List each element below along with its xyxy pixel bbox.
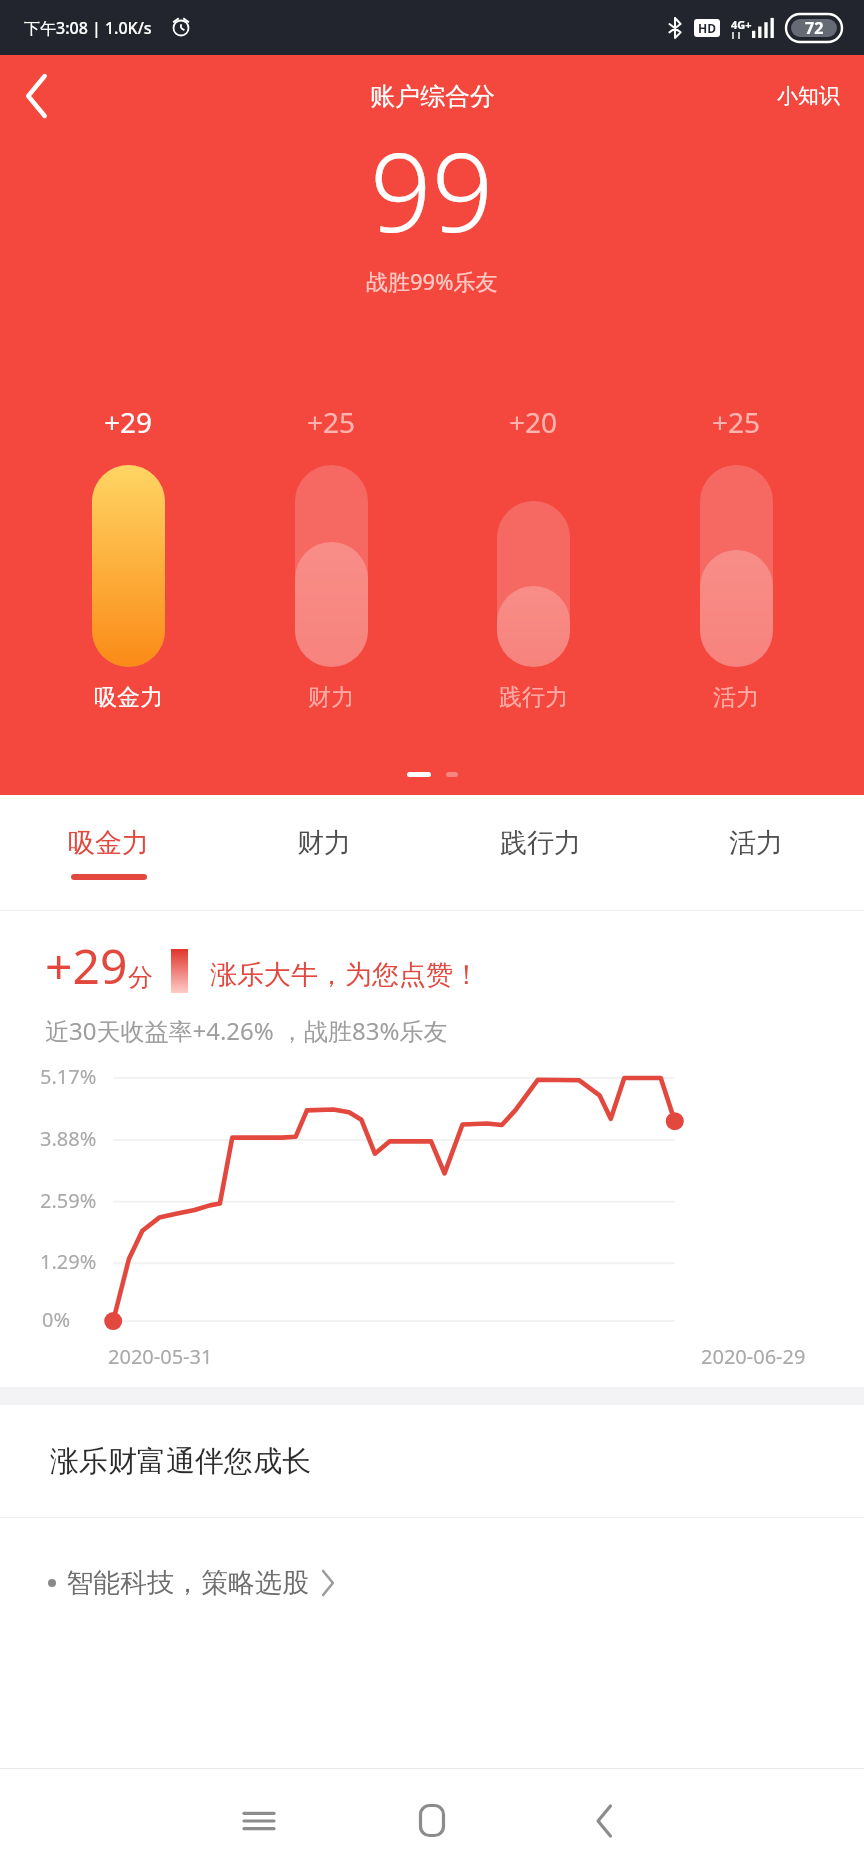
- staticText: 2020-06-29: [701, 1343, 806, 1370]
- button[interactable]: +25: [661, 403, 811, 712]
- staticText: 战胜99%乐友: [366, 266, 498, 296]
- staticText: 财力: [297, 826, 351, 860]
- button[interactable]: +25: [256, 403, 406, 712]
- staticText: 下午3:08 | 1.0K/s: [24, 17, 152, 39]
- staticText: 2.59%: [40, 1187, 97, 1214]
- button[interactable]: 践行力: [432, 795, 648, 911]
- button[interactable]: Back: [0, 59, 74, 133]
- staticText: 账户综合分: [370, 81, 495, 112]
- button[interactable]: 财力: [216, 795, 432, 911]
- staticText: 99: [370, 117, 494, 264]
- staticText: 吸金力: [94, 683, 163, 712]
- button[interactable]: Back: [518, 1769, 691, 1872]
- button[interactable]: Menu: [172, 1769, 345, 1872]
- staticText: 活力: [729, 826, 783, 860]
- staticText: 4G+: [731, 17, 752, 32]
- button[interactable]: +29: [53, 403, 203, 712]
- button[interactable]: 活力: [648, 795, 864, 911]
- staticText: 涨乐财富通伴您成长: [50, 1443, 311, 1480]
- staticText: 践行力: [500, 826, 581, 860]
- staticText: 吸金力: [68, 826, 149, 860]
- staticText: HD: [698, 20, 716, 36]
- staticText: +25: [712, 403, 761, 441]
- staticText: +25: [307, 403, 356, 441]
- button[interactable]: 小知识: [753, 67, 864, 125]
- staticText: 3.88%: [40, 1125, 97, 1152]
- staticText: 智能科技，策略选股: [66, 1566, 309, 1600]
- staticText: 分: [128, 962, 153, 993]
- staticText: 72: [805, 17, 824, 39]
- button[interactable]: 吸金力: [0, 795, 216, 911]
- button[interactable]: 涨乐财富通伴您成长: [0, 1405, 864, 1517]
- staticText: +20: [509, 403, 558, 441]
- staticText: 0%: [42, 1306, 71, 1333]
- staticText: 践行力: [499, 683, 568, 712]
- button[interactable]: 智能科技，策略选股: [0, 1518, 864, 1648]
- staticText: 财力: [308, 683, 354, 712]
- button[interactable]: +20: [458, 403, 608, 712]
- staticText: 涨乐大牛，为您点赞！: [210, 958, 480, 992]
- staticText: +29: [104, 403, 153, 441]
- staticText: 1.29%: [40, 1248, 97, 1275]
- staticText: 活力: [713, 683, 759, 712]
- staticText: 小知识: [777, 83, 840, 109]
- button[interactable]: Home: [345, 1769, 518, 1872]
- staticText: 5.17%: [40, 1063, 97, 1090]
- staticText: 2020-05-31: [108, 1343, 213, 1370]
- staticText: 近30天收益率+4.26% ，战胜83%乐友: [45, 1014, 448, 1047]
- staticText: +29: [45, 933, 128, 998]
